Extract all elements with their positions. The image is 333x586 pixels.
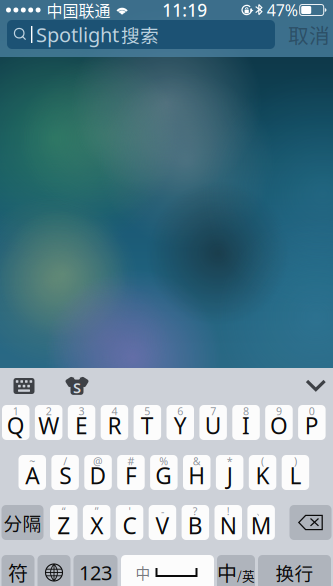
staticText: Z bbox=[57, 510, 70, 540]
staticText: H bbox=[188, 460, 205, 490]
staticText: K bbox=[255, 460, 269, 490]
staticText: 8 bbox=[243, 404, 249, 418]
button[interactable]: 取消 bbox=[288, 20, 330, 49]
button[interactable]: & bbox=[183, 455, 210, 490]
staticText: 1 bbox=[13, 404, 19, 418]
button[interactable]: ” bbox=[83, 505, 110, 540]
button[interactable]: 8 bbox=[232, 405, 260, 440]
staticText: * bbox=[227, 454, 233, 468]
staticText: E bbox=[75, 410, 88, 440]
button[interactable]: ' bbox=[116, 505, 143, 540]
button[interactable]: “ bbox=[50, 505, 77, 540]
staticText: 2 bbox=[46, 404, 52, 418]
button[interactable]: 2 bbox=[35, 405, 62, 440]
staticText: T bbox=[141, 410, 154, 440]
staticText: 3 bbox=[78, 404, 84, 418]
staticText: L bbox=[289, 460, 301, 490]
button[interactable]: 换行 bbox=[258, 555, 331, 586]
button[interactable]: - bbox=[149, 505, 176, 540]
button[interactable]: 3 bbox=[68, 405, 95, 440]
staticText: X bbox=[90, 510, 103, 540]
button[interactable]: Keyboard theme bbox=[60, 371, 94, 401]
staticText: ( bbox=[261, 454, 264, 468]
button[interactable]: ) bbox=[282, 455, 309, 490]
staticText: 47% bbox=[267, 0, 298, 21]
staticText: ' bbox=[129, 504, 131, 518]
staticText: D bbox=[89, 460, 106, 490]
staticText: ? bbox=[193, 504, 198, 518]
staticText: Spotlight bbox=[36, 21, 119, 48]
staticText: V bbox=[155, 510, 169, 540]
staticText: / bbox=[237, 566, 242, 584]
staticText: P bbox=[305, 410, 319, 440]
staticText: W bbox=[38, 410, 59, 440]
staticText: 换行 bbox=[275, 559, 313, 586]
button[interactable]: * bbox=[216, 455, 243, 490]
staticText: / bbox=[63, 454, 67, 468]
staticText: “ bbox=[62, 504, 66, 518]
staticText: A bbox=[25, 460, 39, 490]
staticText: ! bbox=[227, 504, 230, 518]
button[interactable]: 符 bbox=[1, 555, 34, 586]
staticText: 中 bbox=[217, 558, 237, 586]
staticText: 4 bbox=[111, 404, 117, 418]
staticText: I bbox=[242, 410, 250, 440]
button[interactable]: ~ bbox=[18, 455, 46, 490]
staticText: M bbox=[251, 510, 272, 540]
staticText: N bbox=[220, 510, 237, 540]
button[interactable]: 分隔 bbox=[1, 505, 43, 540]
button[interactable]: 123 bbox=[73, 555, 117, 586]
button[interactable]: 4 bbox=[101, 405, 128, 440]
staticText: 9 bbox=[276, 404, 282, 418]
staticText: O bbox=[270, 410, 288, 440]
staticText: & bbox=[193, 454, 201, 468]
button[interactable]: 1 bbox=[2, 405, 29, 440]
button[interactable]: @ bbox=[84, 455, 112, 490]
staticText: 搜索 bbox=[121, 21, 159, 48]
button[interactable]: 9 bbox=[265, 405, 293, 440]
button[interactable]: 6 bbox=[166, 405, 194, 440]
button[interactable] bbox=[289, 505, 331, 540]
button[interactable]: 0 bbox=[298, 405, 326, 440]
button[interactable]: Hide keyboard bbox=[299, 371, 333, 401]
button[interactable]: 中 bbox=[121, 555, 214, 586]
button[interactable]: 中 bbox=[217, 555, 255, 586]
staticText: U bbox=[205, 410, 222, 440]
button[interactable]: ! bbox=[214, 505, 242, 540]
staticText: ” bbox=[95, 504, 99, 518]
staticText: - bbox=[161, 504, 164, 518]
staticText: 英 bbox=[242, 566, 255, 585]
staticText: Q bbox=[7, 410, 25, 440]
staticText: 、 bbox=[256, 504, 267, 517]
staticText: B bbox=[188, 510, 203, 540]
button[interactable]: / bbox=[51, 455, 79, 490]
staticText: G bbox=[155, 460, 172, 490]
staticText: ~ bbox=[29, 454, 35, 468]
button[interactable]: Keyboard settings bbox=[7, 371, 41, 401]
button[interactable]: ? bbox=[182, 505, 209, 540]
staticText: # bbox=[127, 454, 134, 468]
staticText: S bbox=[59, 460, 71, 490]
staticText: R bbox=[107, 410, 121, 440]
staticText: 0 bbox=[309, 404, 315, 418]
button[interactable]: ( bbox=[249, 455, 276, 490]
staticText: 123 bbox=[79, 559, 112, 586]
button[interactable]: 7 bbox=[199, 405, 227, 440]
staticText: 中 bbox=[135, 562, 150, 583]
staticText: F bbox=[125, 460, 137, 490]
staticText: 11:19 bbox=[162, 0, 207, 21]
button[interactable]: 5 bbox=[134, 405, 161, 440]
staticText: 取消 bbox=[288, 19, 330, 49]
button[interactable]: # bbox=[117, 455, 145, 490]
staticText: C bbox=[123, 510, 137, 540]
staticText: 分隔 bbox=[3, 509, 41, 536]
staticText: S bbox=[73, 378, 81, 397]
button[interactable]: % bbox=[150, 455, 178, 490]
staticText: Y bbox=[174, 410, 187, 440]
staticText: 6 bbox=[177, 404, 183, 418]
button[interactable]: 、 bbox=[247, 505, 275, 540]
staticText: % bbox=[159, 454, 168, 468]
staticText: 5 bbox=[144, 404, 150, 418]
button[interactable] bbox=[37, 555, 70, 586]
staticText: 中国联通 bbox=[47, 0, 111, 22]
